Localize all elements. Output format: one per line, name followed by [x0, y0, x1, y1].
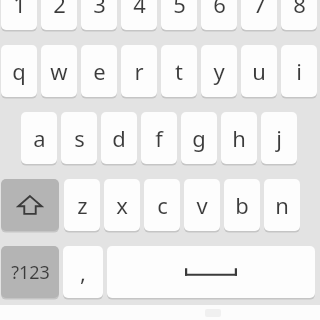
button[interactable]: ?123	[1, 246, 59, 298]
staticText: 1	[13, 0, 26, 19]
staticText: f	[155, 123, 163, 153]
button[interactable]: ,	[63, 246, 103, 298]
button[interactable]: n	[264, 179, 300, 231]
button[interactable]: q	[1, 45, 37, 97]
staticText: x	[116, 190, 128, 220]
button[interactable]: 8	[281, 0, 317, 30]
button[interactable]: i	[281, 45, 317, 97]
staticText: z	[77, 190, 88, 220]
staticText: g	[192, 123, 206, 153]
button[interactable]: e	[81, 45, 117, 97]
button[interactable]: y	[201, 45, 237, 97]
button[interactable]: z	[64, 179, 100, 231]
staticText: 6	[213, 0, 226, 19]
staticText: 3	[93, 0, 106, 19]
staticText: u	[252, 56, 266, 86]
button[interactable]: c	[144, 179, 180, 231]
button[interactable]: 2	[41, 0, 77, 30]
button[interactable]: s	[61, 112, 97, 164]
staticText: ?123	[11, 260, 50, 285]
button[interactable]: h	[221, 112, 257, 164]
button[interactable]: u	[241, 45, 277, 97]
staticText: d	[112, 123, 126, 153]
button[interactable]: 6	[201, 0, 237, 30]
button[interactable]: 3	[81, 0, 117, 30]
staticText: ,	[80, 257, 86, 287]
button[interactable]: w	[41, 45, 77, 97]
button[interactable]: Shift	[1, 179, 59, 231]
button[interactable]: g	[181, 112, 217, 164]
staticText: a	[33, 123, 46, 153]
button[interactable]: r	[121, 45, 157, 97]
staticText: c	[157, 190, 168, 220]
staticText: 4	[133, 0, 146, 19]
button[interactable]: Space	[107, 246, 315, 298]
staticText: 2	[53, 0, 66, 19]
staticText: n	[275, 190, 289, 220]
button[interactable]: j	[261, 112, 297, 164]
button[interactable]: t	[161, 45, 197, 97]
staticText: 5	[173, 0, 186, 19]
staticText: t	[175, 56, 183, 86]
staticText: e	[93, 56, 106, 86]
staticText: 7	[253, 0, 266, 19]
staticText: y	[213, 56, 225, 86]
button[interactable]: 5	[161, 0, 197, 30]
button[interactable]: 1	[1, 0, 37, 30]
button[interactable]: v	[184, 179, 220, 231]
staticText: q	[12, 56, 26, 86]
button[interactable]: 4	[121, 0, 157, 30]
button[interactable]: b	[224, 179, 260, 231]
staticText: h	[232, 123, 246, 153]
button[interactable]: x	[104, 179, 140, 231]
button[interactable]: d	[101, 112, 137, 164]
staticText: r	[134, 56, 144, 86]
staticText: i	[296, 56, 302, 86]
staticText: v	[196, 190, 208, 220]
staticText: s	[74, 123, 85, 153]
staticText: b	[235, 190, 249, 220]
button[interactable]: f	[141, 112, 177, 164]
staticText: w	[50, 56, 68, 86]
button[interactable]: 7	[241, 0, 277, 30]
staticText: j	[276, 123, 282, 153]
staticText: 8	[293, 0, 306, 19]
button[interactable]: a	[21, 112, 57, 164]
